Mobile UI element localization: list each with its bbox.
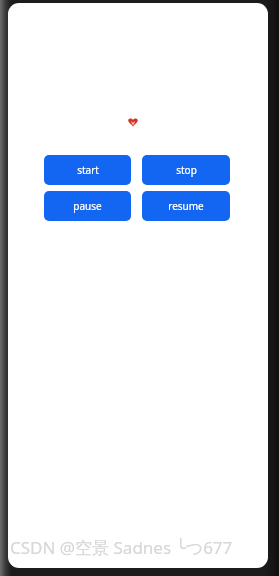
staticText: pause (73, 199, 102, 213)
staticText: CSDN @空景 Sadnes ╰つ677 (10, 536, 233, 559)
button[interactable]: pause (44, 191, 131, 221)
button[interactable]: stop (142, 155, 230, 185)
staticText: resume (168, 199, 204, 213)
staticText: stop (176, 163, 197, 177)
staticText: start (77, 163, 99, 177)
button[interactable]: resume (142, 191, 230, 221)
other: Heart rate (128, 118, 138, 127)
button[interactable]: start (44, 155, 131, 185)
